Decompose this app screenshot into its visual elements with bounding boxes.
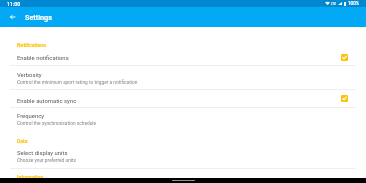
- staticText: Settings: [25, 13, 53, 22]
- staticText: Data: [17, 138, 28, 144]
- staticText: LTE: [331, 2, 337, 6]
- other: Enable automatic sync: [341, 95, 348, 102]
- staticText: 100%: [348, 1, 360, 6]
- button[interactable]: Frequency: [0, 110, 366, 130]
- button[interactable]: Enable notifications: [0, 52, 366, 65]
- staticText: Choose your preferred units: [17, 158, 76, 164]
- staticText: Select display units: [17, 150, 68, 157]
- staticText: 11:00: [7, 1, 21, 7]
- staticText: Information: [17, 174, 44, 180]
- button[interactable]: Enable automatic sync: [0, 95, 366, 108]
- staticText: Enable automatic sync: [17, 98, 77, 105]
- staticText: Enable notifications: [17, 55, 69, 62]
- button[interactable]: Select display units: [0, 147, 366, 167]
- staticText: Control the minimum sport rating to trig…: [17, 80, 138, 86]
- button[interactable]: Verbosity: [0, 69, 366, 89]
- staticText: Frequency: [17, 113, 45, 120]
- staticText: Control the synchronisation schedule: [17, 121, 96, 127]
- staticText: Verbosity: [17, 72, 42, 79]
- staticText: Notifications: [17, 42, 46, 48]
- other: Enable notifications: [341, 54, 348, 61]
- button[interactable]: Navigate back: [0, 7, 22, 27]
